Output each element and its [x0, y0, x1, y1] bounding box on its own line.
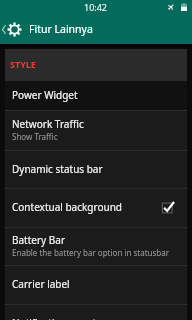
- button[interactable]: Power Widget: [5, 81, 187, 110]
- staticText: Enable the battery bar option in statusb…: [12, 247, 170, 258]
- button[interactable]: Carrier label: [5, 266, 187, 304]
- button[interactable]: Contextual background: [5, 189, 187, 227]
- staticText: STYLE: [10, 58, 36, 70]
- staticText: Dynamic status bar: [12, 162, 103, 176]
- button[interactable]: Navigate up: [0, 14, 26, 44]
- staticText: Power Widget: [12, 88, 78, 102]
- staticText: Fitur Lainnya: [29, 22, 93, 36]
- button[interactable]: Battery Bar: [5, 228, 187, 265]
- staticText: Network Traffic: [12, 117, 84, 131]
- staticText: Contextual background: [12, 200, 123, 214]
- button[interactable]: Contextual background checkbox: [161, 200, 175, 214]
- staticText: Notification count: [12, 316, 97, 320]
- staticText: 10:42: [84, 1, 108, 13]
- staticText: Show Traffic: [12, 131, 58, 142]
- button[interactable]: Network Traffic: [5, 111, 187, 150]
- button[interactable]: Notification count: [5, 305, 187, 320]
- staticText: Carrier label: [12, 277, 70, 291]
- staticText: Battery Bar: [12, 233, 66, 247]
- button[interactable]: Dynamic status bar: [5, 151, 187, 188]
